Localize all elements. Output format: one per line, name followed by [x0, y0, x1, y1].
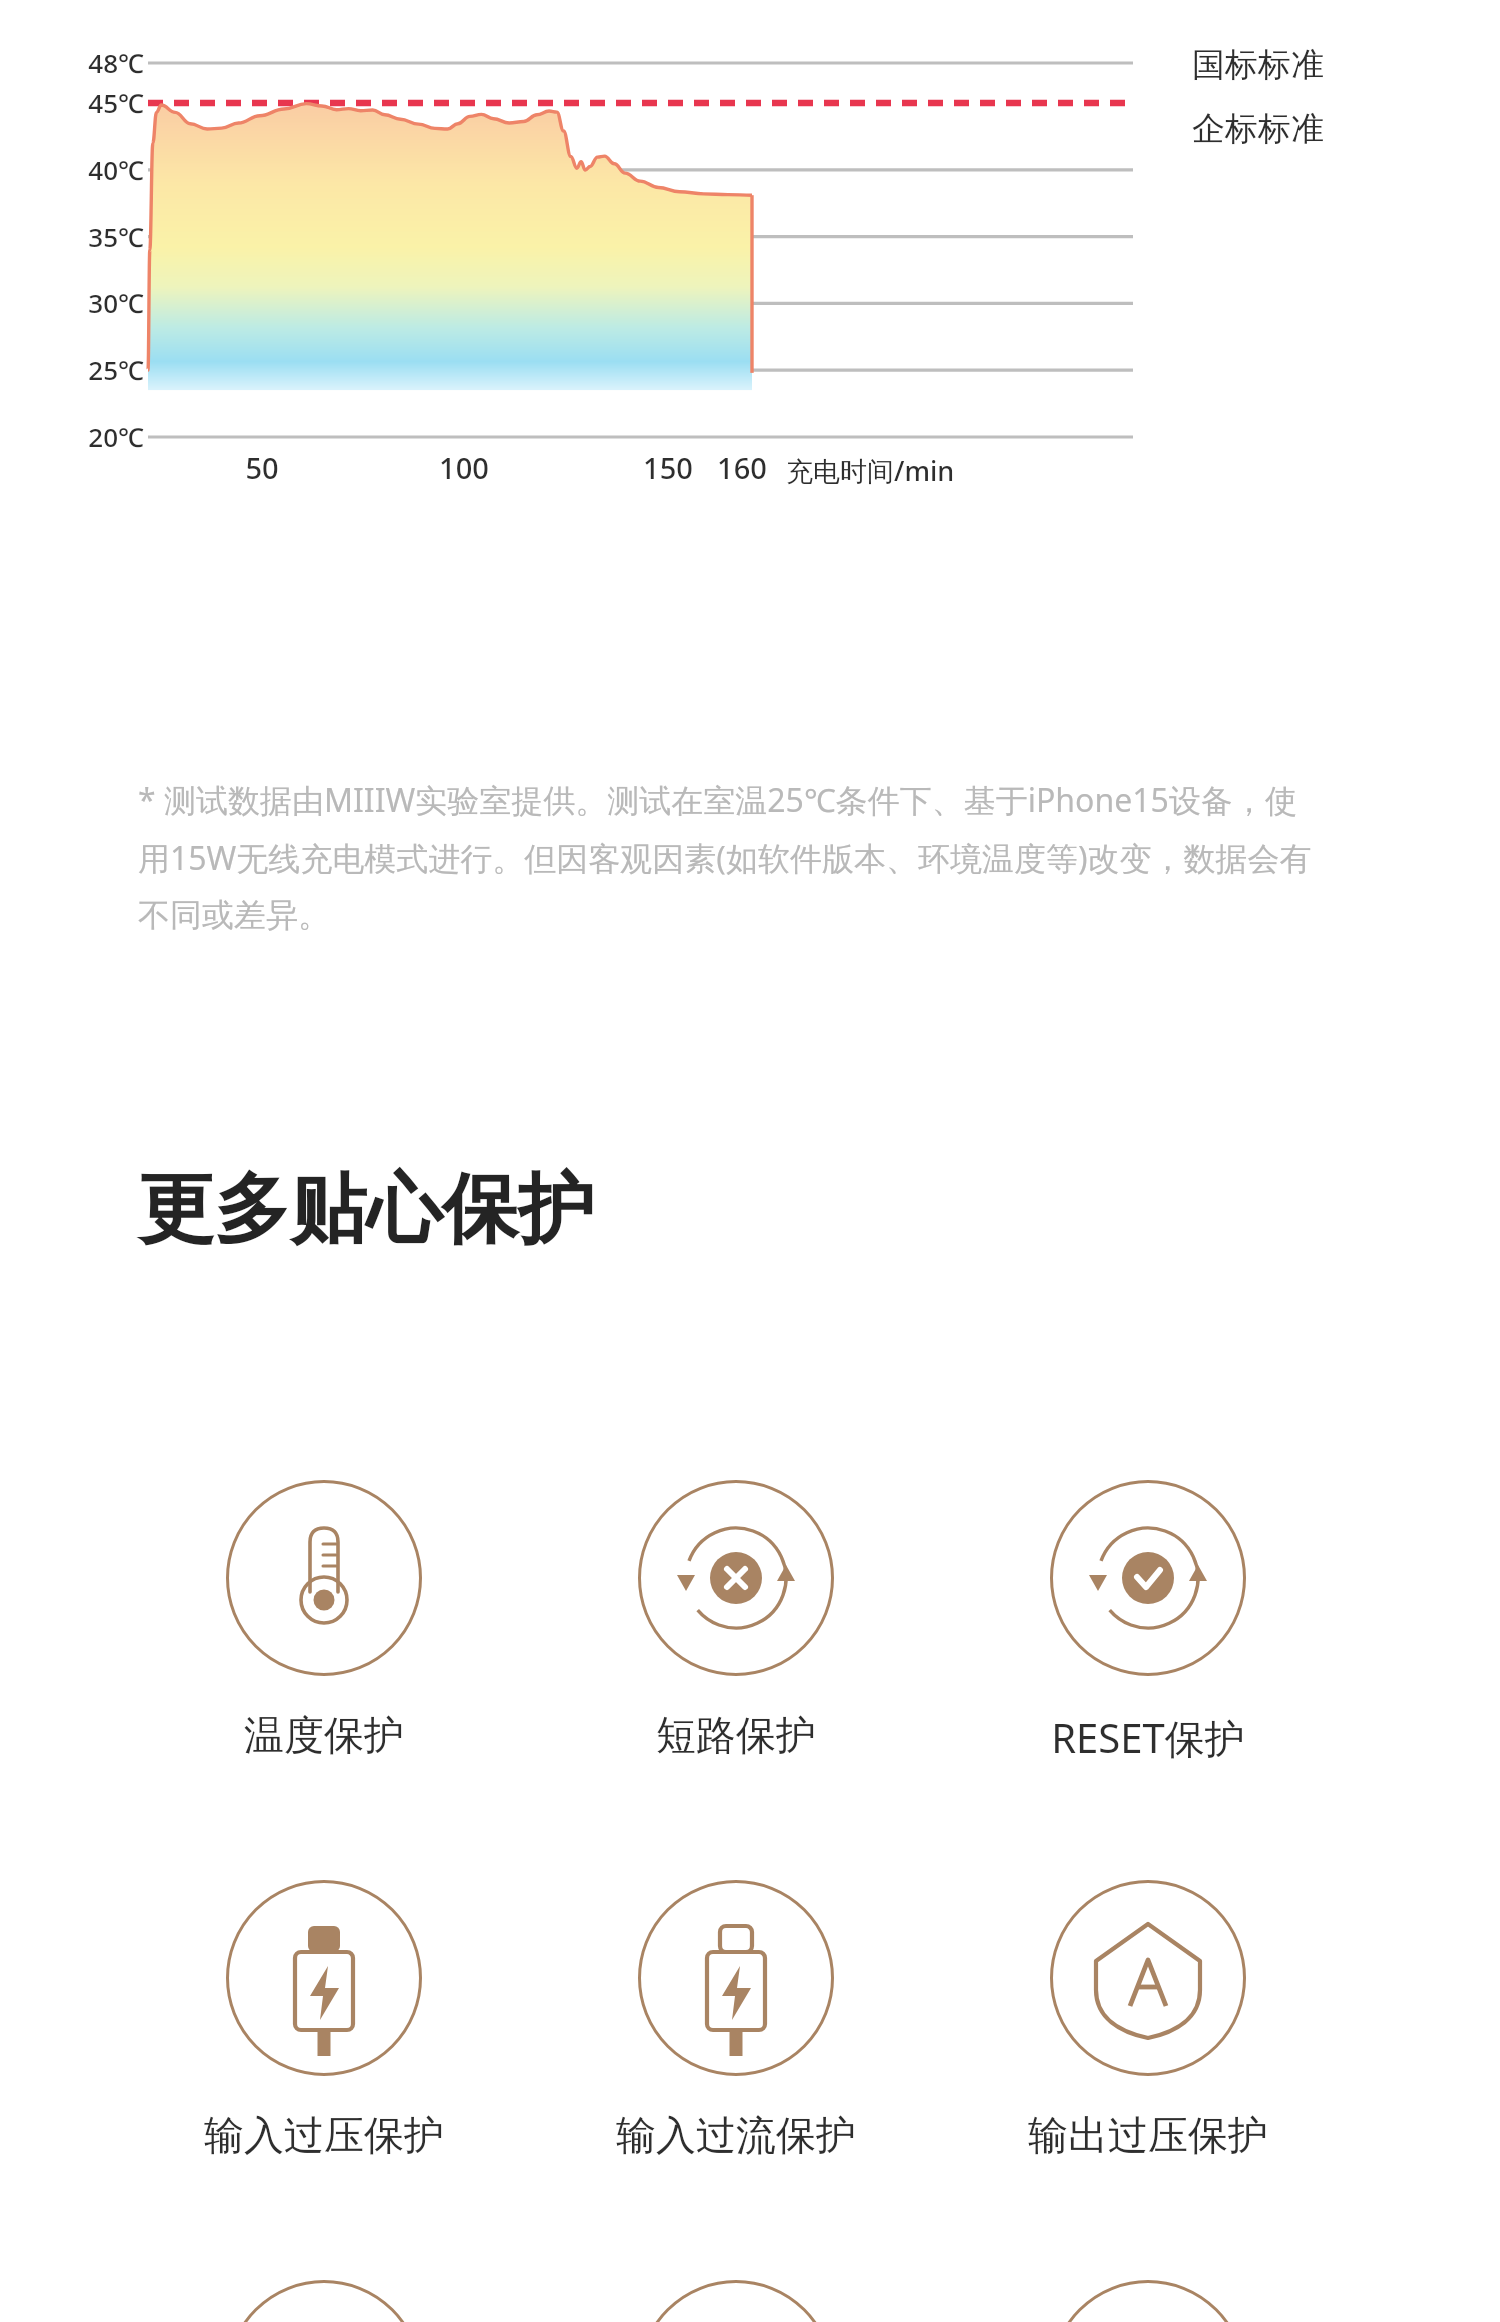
- staticText: 输入过流保护: [506, 2110, 966, 2160]
- button[interactable]: 输入过压保护: [226, 1880, 422, 2076]
- staticText: 20℃: [88, 419, 144, 454]
- button[interactable]: 输入过流保护: [638, 1880, 834, 2076]
- button[interactable]: protection 7: [638, 2280, 834, 2322]
- staticText: 输入过压保护: [94, 2110, 554, 2160]
- staticText: 充电时间/min: [786, 452, 955, 489]
- button[interactable]: protection 8: [1050, 2280, 1246, 2322]
- staticText: 35℃: [88, 219, 144, 254]
- staticText: RESET保护: [918, 1710, 1378, 1765]
- button[interactable]: 温度保护: [226, 1480, 422, 1676]
- staticText: 48℃: [88, 45, 144, 80]
- staticText: 短路保护: [506, 1710, 966, 1760]
- staticText: 160: [682, 448, 802, 487]
- staticText: 30℃: [88, 285, 144, 320]
- button[interactable]: 输出过压保护: [1050, 1880, 1246, 2076]
- staticText: 25℃: [88, 352, 144, 387]
- staticText: 50: [202, 448, 322, 487]
- button[interactable]: 短路保护: [638, 1480, 834, 1676]
- staticText: 45℃: [88, 85, 144, 120]
- staticText: * 测试数据由MIIIW实验室提供。测试在室温25℃条件下、基于iPhone15…: [138, 778, 1328, 935]
- staticText: 更多贴心保护: [138, 1162, 594, 1258]
- staticText: 输出过压保护: [918, 2110, 1378, 2160]
- staticText: 150: [608, 448, 728, 487]
- staticText: 40℃: [88, 152, 144, 187]
- button[interactable]: protection 6: [226, 2280, 422, 2322]
- staticText: 温度保护: [94, 1710, 554, 1760]
- button[interactable]: RESET保护: [1050, 1480, 1246, 1676]
- staticText: 企标标准: [1192, 108, 1324, 150]
- staticText: 100: [404, 448, 524, 487]
- staticText: 国标标准: [1192, 44, 1324, 86]
